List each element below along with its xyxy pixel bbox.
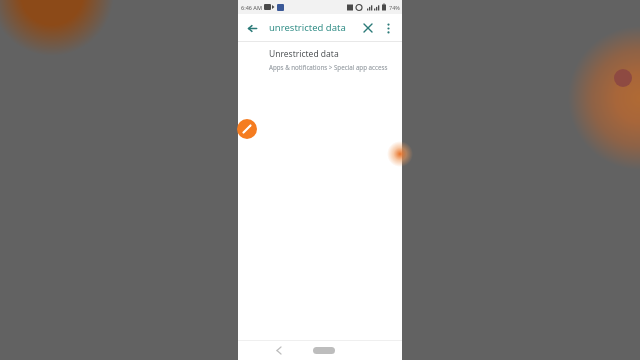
button[interactable]: unrestricted data <box>269 21 359 34</box>
staticText: 74% <box>389 4 400 11</box>
button[interactable]: Back <box>243 19 261 37</box>
button[interactable]: Back <box>271 342 287 358</box>
button[interactable]: Unrestricted data <box>238 42 402 77</box>
button[interactable]: Home <box>313 347 335 354</box>
staticText: 6:46 AM <box>241 4 263 11</box>
staticText: Apps & notifications > Special app acces… <box>269 63 388 71</box>
button[interactable]: Clear search <box>359 19 377 37</box>
button[interactable]: More options <box>379 19 397 37</box>
staticText: unrestricted data <box>269 21 346 34</box>
staticText: Unrestricted data <box>269 48 339 60</box>
